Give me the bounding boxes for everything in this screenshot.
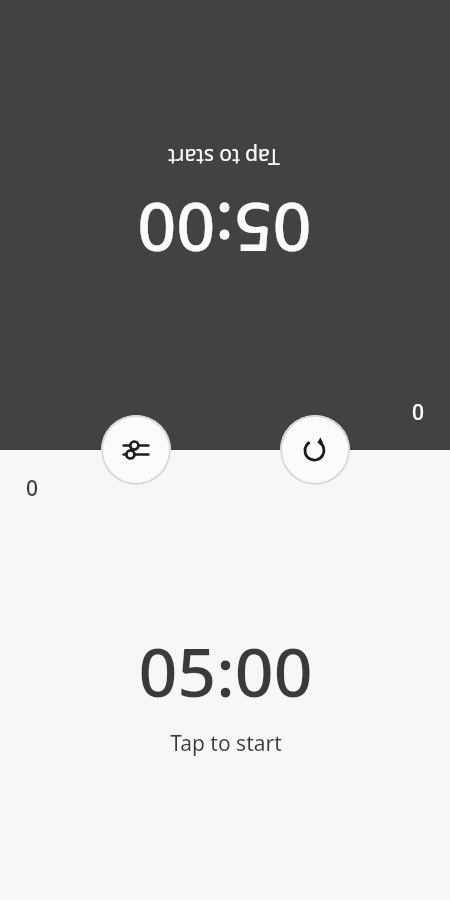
staticText: 0: [26, 474, 39, 503]
staticText: 05:00: [137, 183, 312, 276]
staticText: 05:00: [138, 624, 313, 717]
staticText: 0: [411, 397, 424, 426]
button[interactable]: Settings: [101, 415, 171, 485]
staticText: Tap to start: [168, 142, 280, 171]
button[interactable]: 0: [0, 0, 450, 450]
button[interactable]: 0: [0, 450, 450, 900]
staticText: Tap to start: [170, 729, 282, 758]
button[interactable]: Reset: [280, 415, 350, 485]
